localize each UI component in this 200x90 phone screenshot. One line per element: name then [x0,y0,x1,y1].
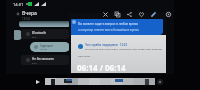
button[interactable] [67,78,78,85]
button[interactable]: Скриншот [30,42,70,52]
button[interactable] [19,21,70,27]
button[interactable]: Bluetooth [21,29,69,39]
button[interactable]: Edit [150,11,157,18]
button[interactable] [111,78,122,85]
staticText: Чат службы поддержки · 12:03 [85,43,127,47]
button[interactable]: Не беспокоить [21,55,69,65]
button[interactable]: Вы можете задать вопрос в любое время [71,19,163,35]
button[interactable]: Чат службы поддержки · 12:03 [71,35,166,73]
button[interactable]: Play [34,78,41,85]
button[interactable]: Copy [114,11,121,18]
staticText: Если вы не получили ответ, напишите нам … [85,47,162,50]
staticText: вкл. [32,35,37,38]
staticText: 14:01 [13,2,24,7]
staticText: и оператор ответит вам в ближайшее время [78,28,139,32]
button[interactable] [56,78,67,85]
button[interactable]: Favourite [138,11,145,18]
button[interactable]: Close [102,11,109,18]
staticText: сейчас [40,48,48,51]
staticText: Вкл. [32,61,38,64]
staticText: 15:54 [22,17,30,21]
staticText: Вчера [22,10,37,17]
button[interactable] [45,78,56,85]
staticText: Bluetooth [32,31,47,35]
staticText: Вы можете задать вопрос в любое время [78,22,139,26]
button[interactable]: Share [126,11,133,18]
button[interactable] [144,78,155,85]
button[interactable]: Settings [165,11,172,18]
button[interactable] [122,78,133,85]
staticText: Скриншот [40,44,53,48]
button[interactable]: Scrubber [157,79,163,85]
staticText: 06:14 / 06:14 [77,62,126,73]
staticText: Не беспокоить [32,57,54,61]
staticText: Ваш ответ [78,54,91,57]
